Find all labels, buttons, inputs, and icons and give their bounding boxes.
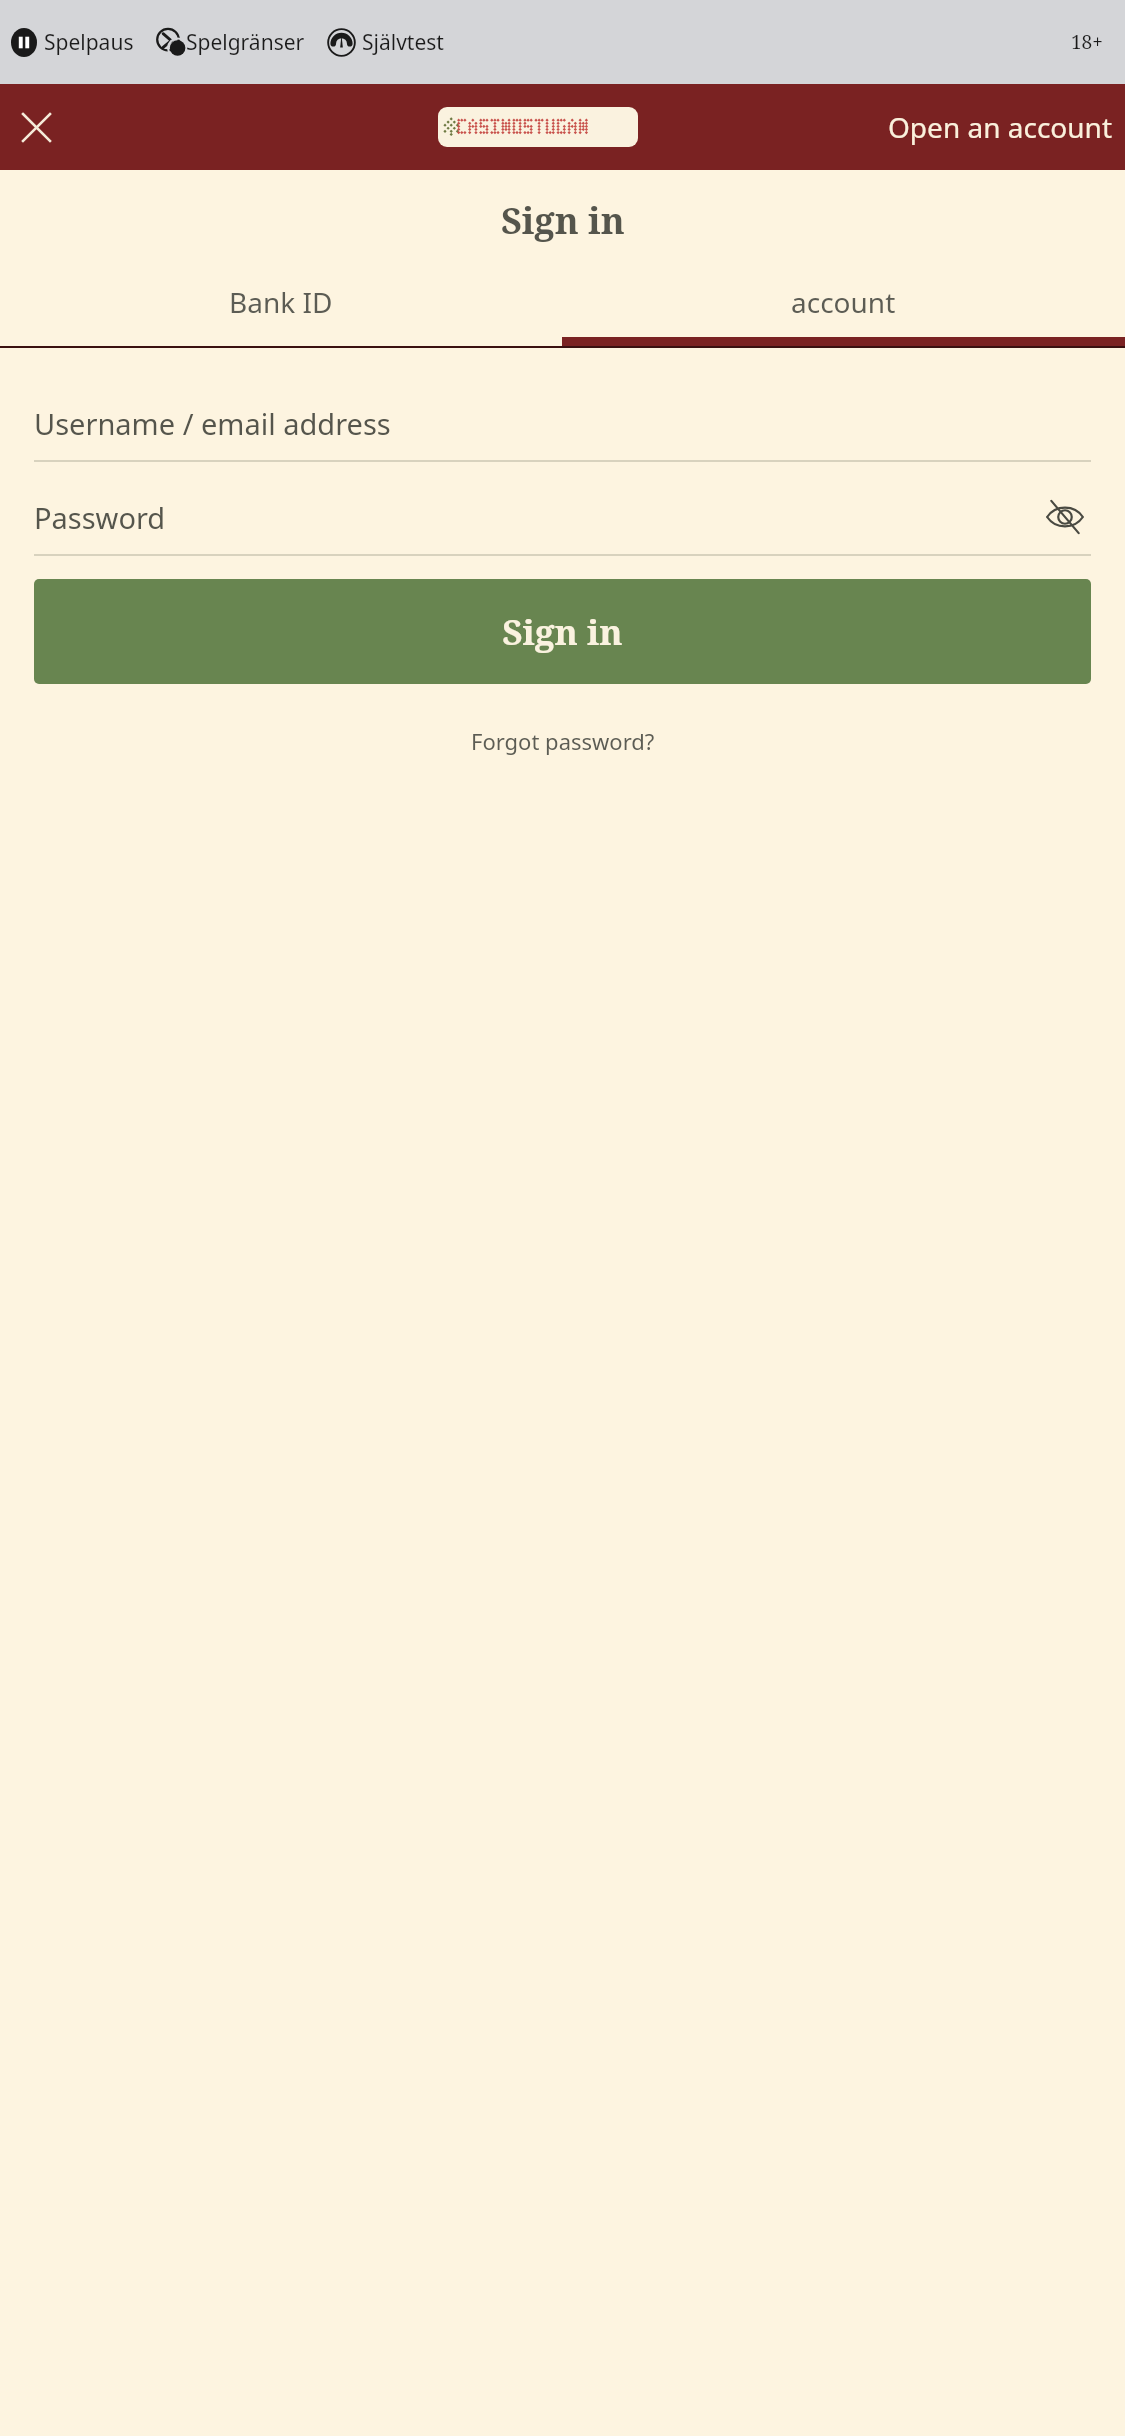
staticText: Password — [34, 498, 166, 537]
button[interactable]: Open an account — [882, 100, 1119, 154]
staticText: Spelgränser — [186, 28, 305, 57]
staticText: 18+ — [1071, 29, 1103, 55]
staticText: Bank ID — [229, 283, 333, 321]
staticText: account — [791, 283, 896, 321]
staticText: Självtest — [362, 28, 444, 57]
staticText: Open an account — [888, 108, 1113, 146]
button[interactable]: Forgot password? — [457, 720, 669, 762]
button[interactable]: Close — [8, 99, 64, 155]
button[interactable]: Password — [34, 480, 1091, 554]
staticText: Sign in — [501, 196, 625, 245]
button[interactable]: Bank ID — [0, 267, 562, 337]
button[interactable]: Username / email address — [34, 386, 1091, 460]
button[interactable]: Spelgränser — [154, 27, 307, 57]
button[interactable]: Casinostugan home — [438, 107, 638, 147]
button[interactable]: account — [562, 267, 1125, 337]
staticText: Spelpaus — [44, 28, 134, 57]
button[interactable]: Spelpaus — [9, 28, 136, 57]
button[interactable]: Självtest — [325, 28, 446, 57]
button[interactable]: Sign in — [34, 579, 1091, 684]
staticText: Sign in — [502, 608, 623, 656]
staticText: Forgot password? — [471, 726, 655, 756]
button[interactable]: Show password — [1039, 491, 1091, 543]
staticText: Username / email address — [34, 404, 391, 443]
